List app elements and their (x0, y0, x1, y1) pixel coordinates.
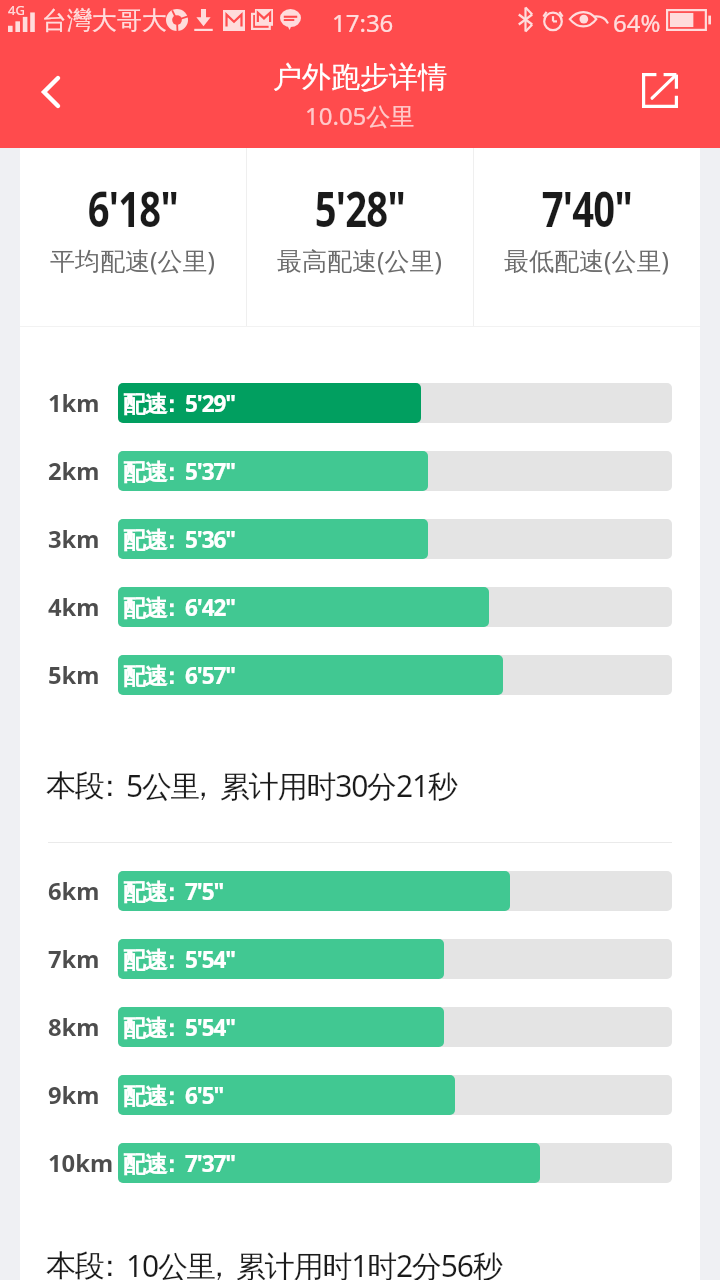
staticText: 5'29" (185, 388, 235, 419)
staticText: 9km (48, 1079, 100, 1111)
staticText: 台灣大哥大 (42, 5, 167, 36)
staticText: 累计用时30分21秒 (220, 765, 457, 806)
staticText: 本段 (46, 767, 104, 805)
button[interactable]: Share (624, 40, 720, 148)
staticText: 7'5" (185, 876, 224, 907)
staticText: ： (160, 946, 182, 974)
staticText: 3km (48, 523, 100, 555)
staticText: 本段 (46, 1247, 104, 1280)
button[interactable]: 配速 (118, 587, 489, 627)
staticText: 7'37" (185, 1148, 235, 1179)
staticText: ： (160, 526, 182, 554)
staticText: 6'18" (88, 175, 178, 242)
staticText: ： (160, 1150, 182, 1178)
staticText: 4km (48, 591, 100, 623)
staticText: ， (188, 767, 217, 805)
staticText: ： (95, 1247, 124, 1280)
staticText: ： (160, 878, 182, 906)
staticText: 10km (48, 1147, 114, 1179)
staticText: 配速 (123, 878, 166, 906)
staticText: ， (204, 1247, 233, 1280)
staticText: 6'57" (185, 660, 235, 691)
staticText: 配速 (123, 1150, 166, 1178)
staticText: ： (160, 390, 182, 418)
staticText: 最低配速(公里) (504, 243, 670, 277)
button[interactable]: 6'18" (20, 148, 246, 327)
staticText: 配速 (123, 458, 166, 486)
staticText: 5'54" (185, 1012, 235, 1043)
staticText: 配速 (123, 1082, 166, 1110)
staticText: 8km (48, 1011, 100, 1043)
staticText: 64% (613, 6, 661, 39)
button[interactable]: 配速 (118, 451, 428, 491)
staticText: 配速 (123, 390, 166, 418)
staticText: 配速 (123, 1014, 166, 1042)
staticText: 5'28" (315, 175, 405, 242)
staticText: 7km (48, 943, 100, 975)
staticText: 5km (48, 659, 100, 691)
button[interactable]: 配速 (118, 1143, 540, 1183)
staticText: 7'40" (542, 175, 632, 242)
button[interactable]: 配速 (118, 1075, 455, 1115)
staticText: 配速 (123, 946, 166, 974)
staticText: ： (160, 594, 182, 622)
staticText: ： (160, 662, 182, 690)
button[interactable]: 配速 (118, 939, 444, 979)
staticText: ： (160, 1014, 182, 1042)
staticText: 10公里 (126, 1245, 216, 1280)
button[interactable]: Back (0, 40, 96, 148)
staticText: 1km (48, 387, 100, 419)
staticText: 6km (48, 875, 100, 907)
staticText: ： (95, 767, 124, 805)
button[interactable]: 配速 (118, 383, 421, 423)
button[interactable]: 配速 (118, 1007, 444, 1047)
staticText: 累计用时1时2分56秒 (236, 1245, 502, 1280)
staticText: 最高配速(公里) (277, 243, 443, 277)
button[interactable]: 配速 (118, 519, 428, 559)
staticText: 6'42" (185, 592, 235, 623)
button[interactable]: 7'40" (474, 148, 700, 327)
staticText: 5'54" (185, 944, 235, 975)
staticText: ： (160, 458, 182, 486)
staticText: 配速 (123, 526, 166, 554)
staticText: 5公里 (126, 765, 200, 806)
staticText: ： (160, 1082, 182, 1110)
staticText: 4G (8, 1, 25, 19)
staticText: 10.05公里 (305, 99, 415, 132)
staticText: 17:36 (332, 6, 394, 39)
staticText: 配速 (123, 662, 166, 690)
staticText: 平均配速(公里) (50, 243, 216, 277)
staticText: 配速 (123, 594, 166, 622)
button[interactable]: 5'28" (247, 148, 473, 327)
button[interactable]: 配速 (118, 871, 510, 911)
staticText: 5'36" (185, 524, 235, 555)
staticText: 2km (48, 455, 100, 487)
staticText: 6'5" (185, 1080, 224, 1111)
staticText: 5'37" (185, 456, 235, 487)
staticText: 户外跑步详情 (273, 59, 447, 96)
button[interactable]: 配速 (118, 655, 503, 695)
